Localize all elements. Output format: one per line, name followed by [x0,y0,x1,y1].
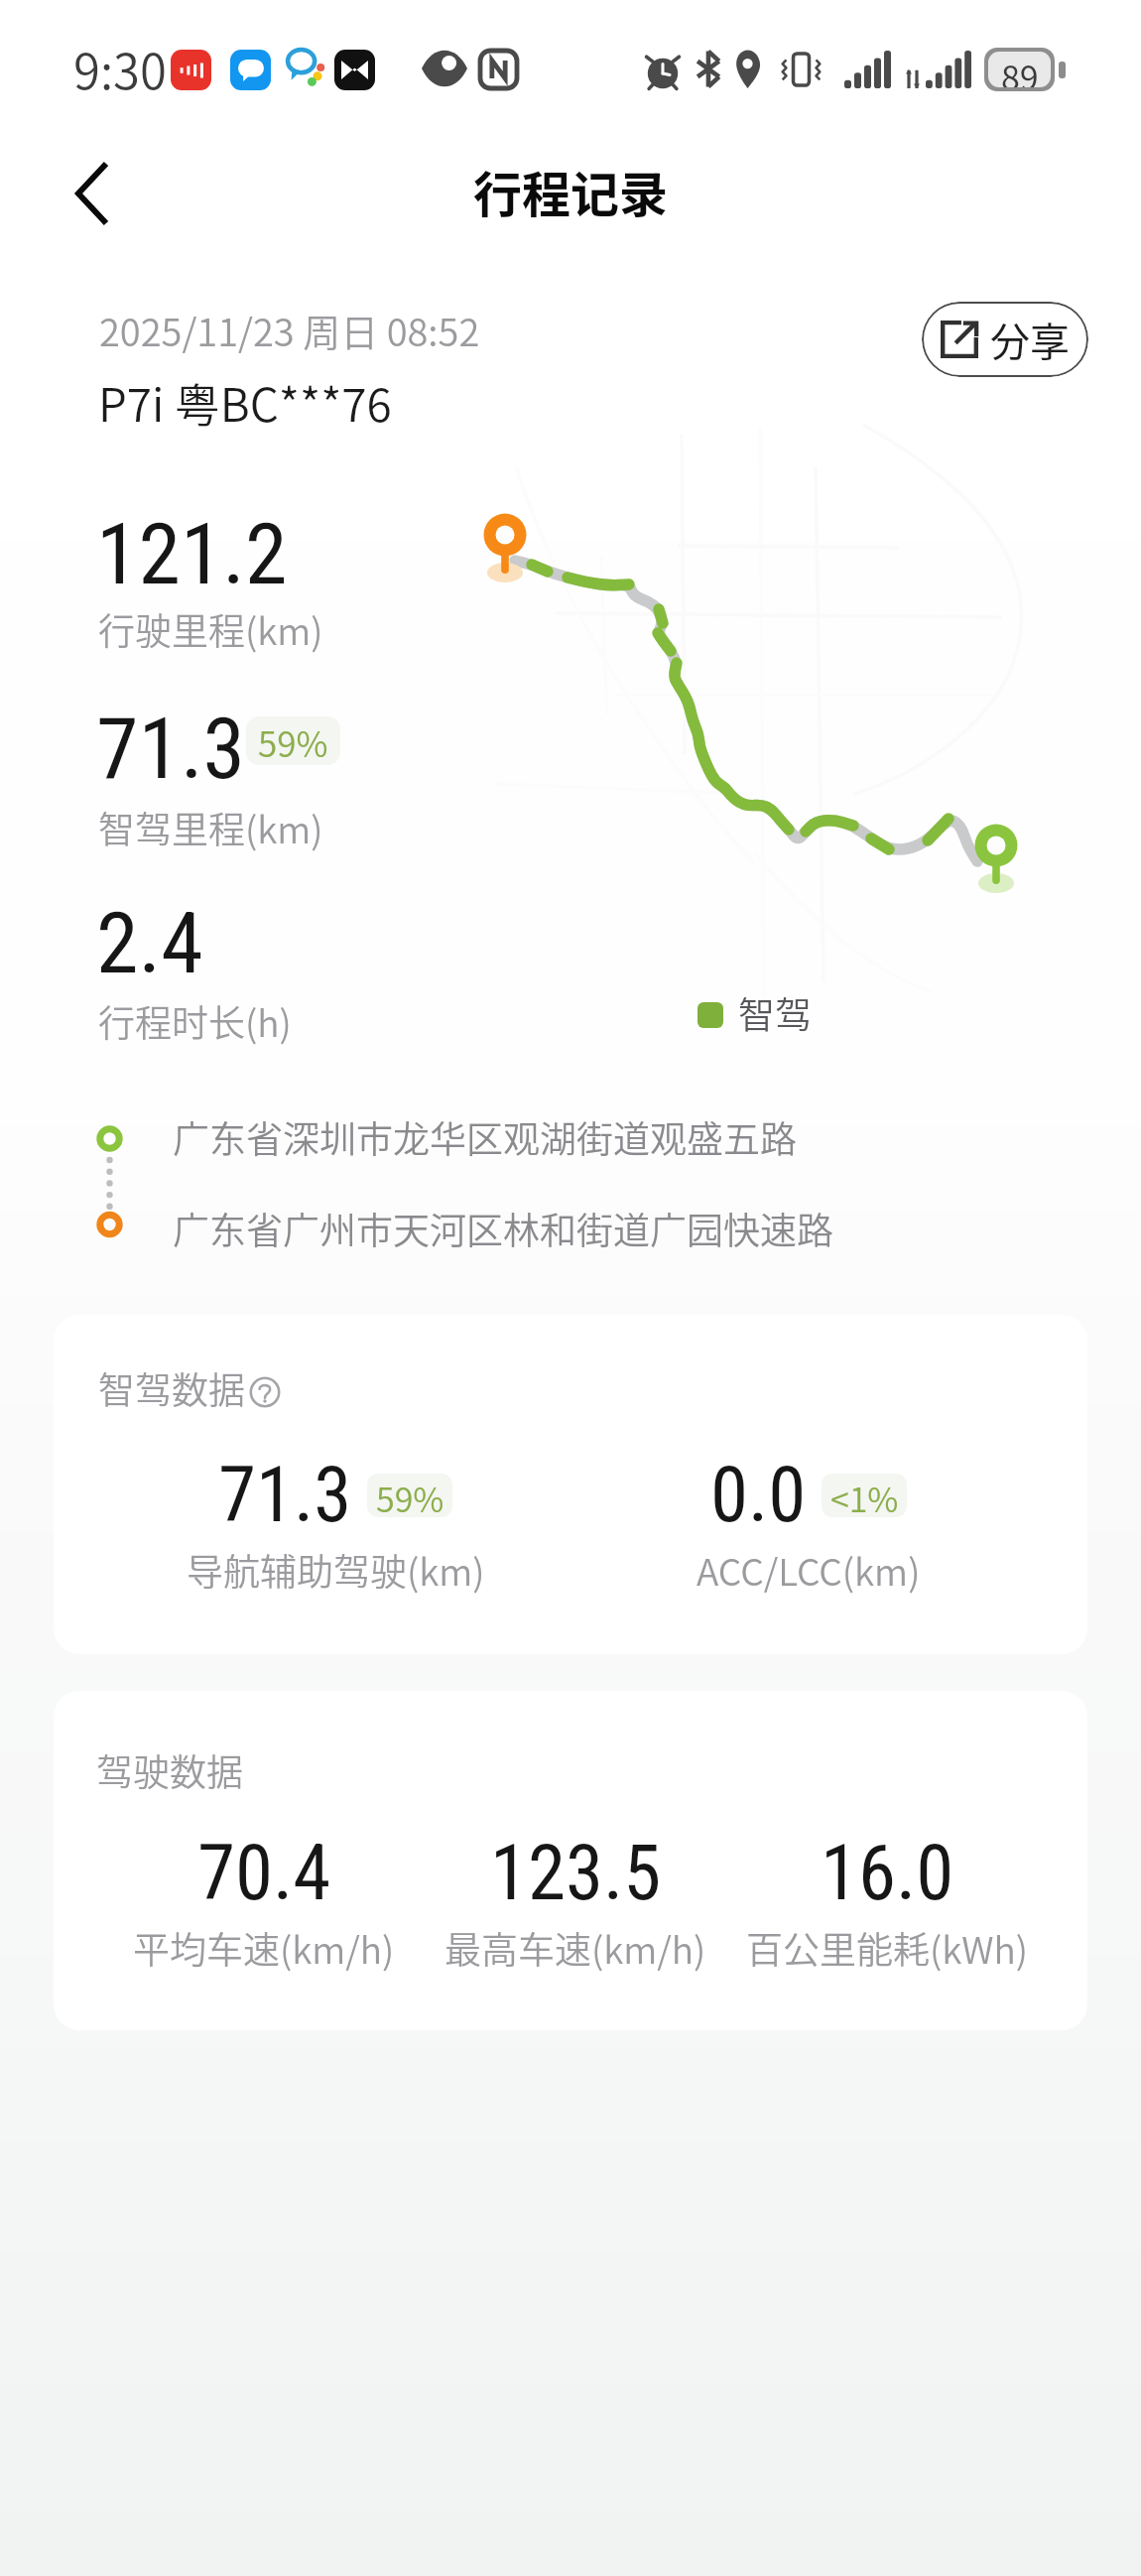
staticText: 最高车速(km/h) [444,1921,706,1975]
staticText: 平均车速(km/h) [133,1921,395,1975]
staticText: 智驾 [738,986,812,1040]
staticText: 59% [258,716,328,765]
staticText: ACC/LCC(km) [697,1543,921,1597]
staticText: 驾驶数据 [96,1743,243,1797]
staticText: 71.3 [218,1451,352,1540]
staticText: 2025/11/23 周日 08:52 [99,303,480,357]
staticText: 0.0 [710,1451,807,1540]
staticText: P7i 粤BC***76 [98,369,392,436]
staticText: 71.3 [96,699,246,799]
button[interactable]: 分享 [922,302,1088,377]
staticText: 广东省深圳市龙华区观湖街道观盛五路 [173,1110,797,1164]
staticText: 59% [376,1474,444,1517]
staticText: 智驾数据 [98,1361,245,1415]
staticText: 百公里能耗(kWh) [746,1921,1029,1975]
staticText: 89 [1001,52,1039,87]
staticText: 分享 [990,311,1070,368]
staticText: 70.4 [197,1829,331,1918]
button[interactable] [54,1315,1087,1654]
staticText: 2.4 [96,893,203,993]
button[interactable]: Help [249,1376,281,1408]
staticText: 行程记录 [473,156,669,226]
button[interactable] [54,1691,1087,2030]
staticText: <1% [830,1474,899,1517]
staticText: 行程时长(h) [98,994,292,1048]
staticText: 123.5 [490,1829,662,1918]
staticText: 9:30 [73,33,167,103]
staticText: 行驶里程(km) [98,602,323,656]
staticText: 智驾里程(km) [98,801,323,854]
staticText: 16.0 [821,1829,954,1918]
button[interactable]: Back [45,146,140,241]
staticText: 导航辅助驾驶(km) [187,1543,485,1597]
staticText: 广东省广州市天河区林和街道广园快速路 [173,1202,833,1255]
staticText: 121.2 [96,504,288,604]
